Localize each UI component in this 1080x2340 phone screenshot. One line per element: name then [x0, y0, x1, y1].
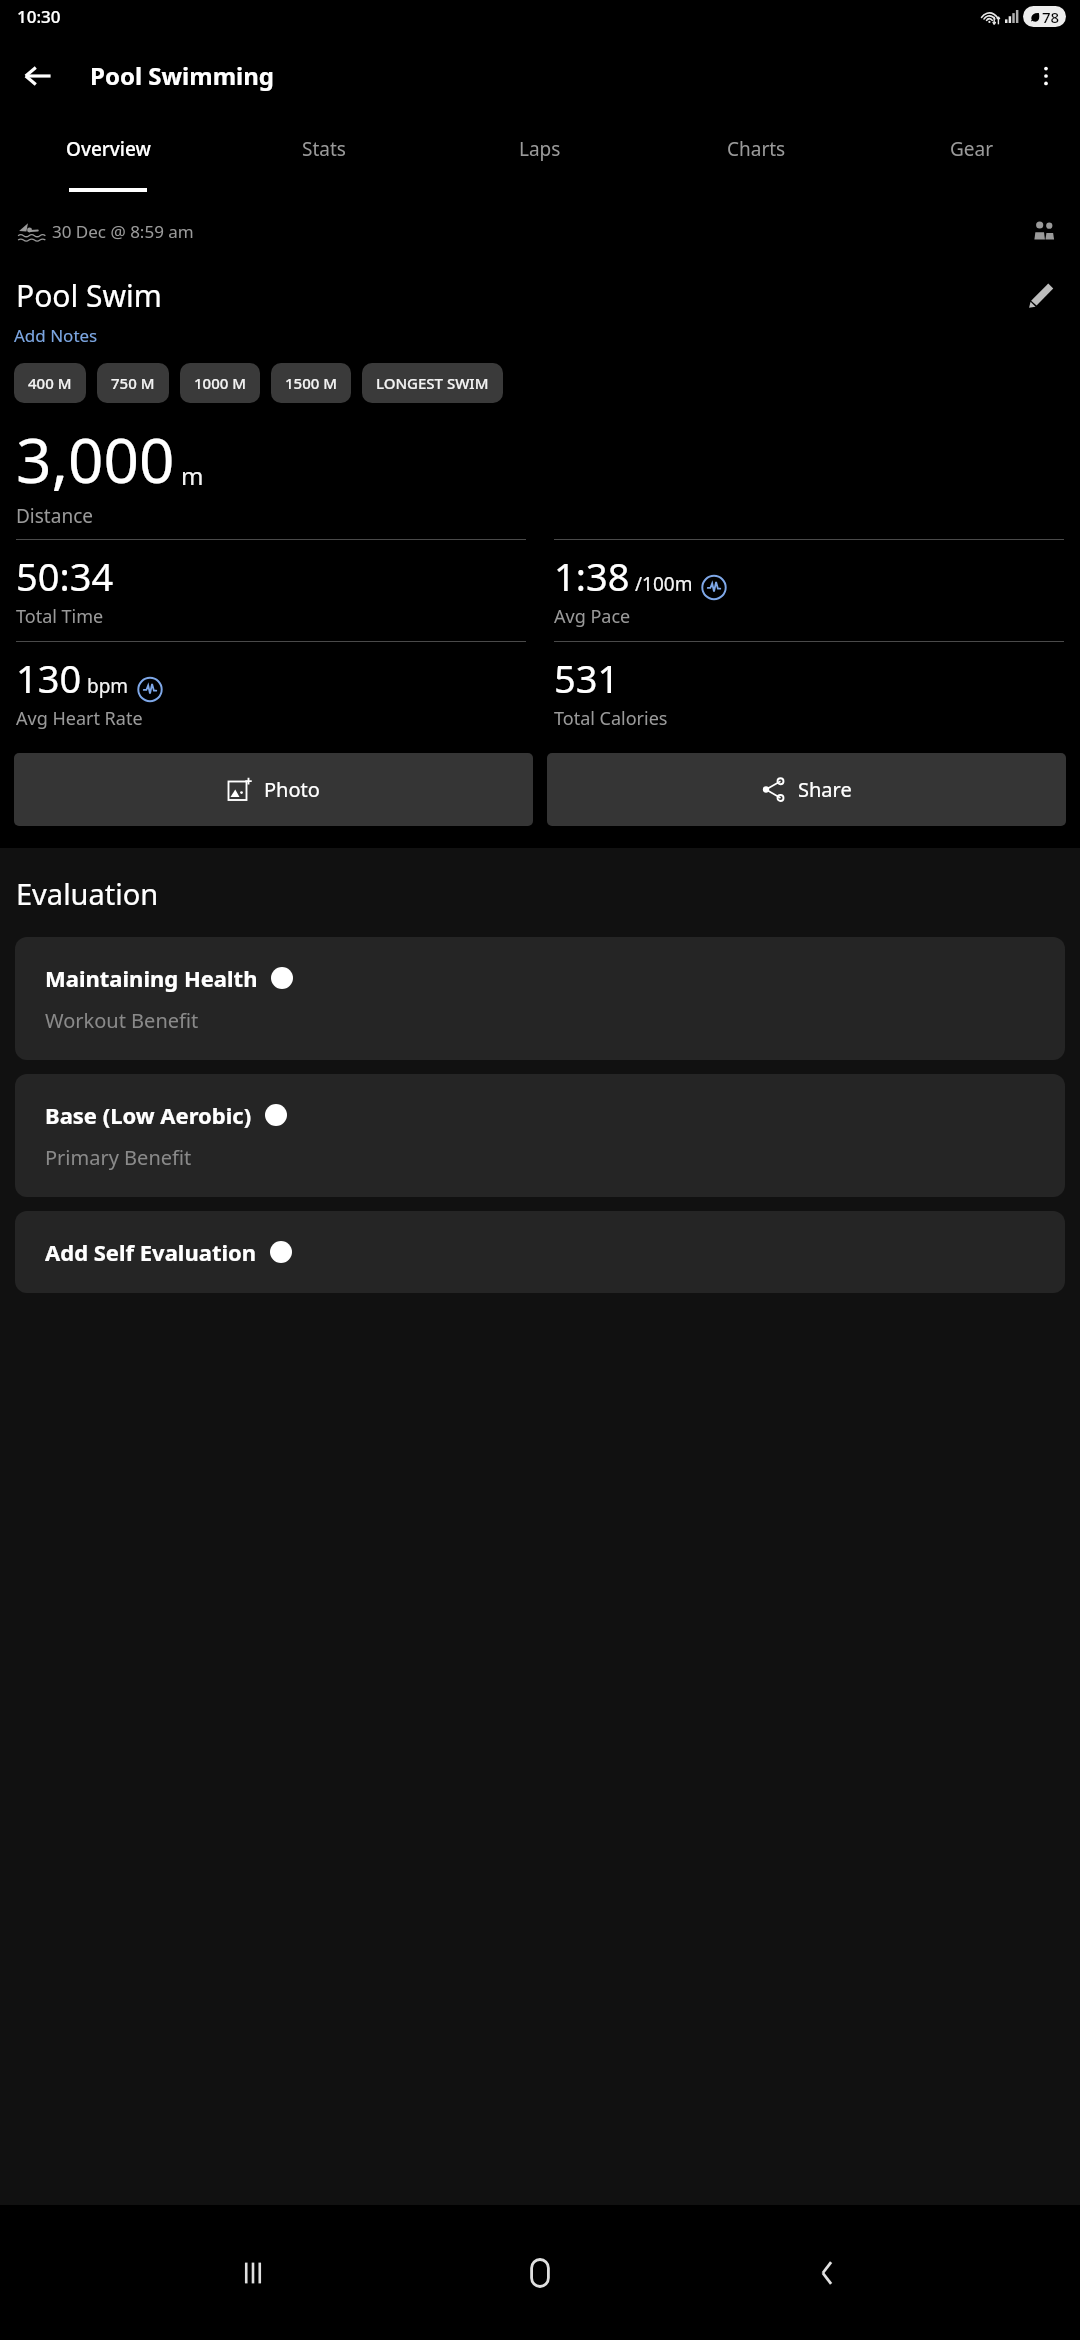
staticText: Share — [798, 776, 852, 803]
staticText: Laps — [519, 136, 561, 162]
button[interactable]: Charts — [648, 118, 864, 198]
staticText: Distance — [16, 503, 93, 529]
staticText: 30 Dec @ 8:59 am — [52, 220, 194, 243]
staticText: Base (Low Aerobic) — [45, 1100, 252, 1130]
staticText: LONGEST SWIM — [376, 373, 489, 393]
button[interactable]: Gear — [864, 118, 1080, 198]
button[interactable]: Add Self Evaluation — [15, 1211, 1065, 1293]
staticText: Add Self Evaluation — [45, 1237, 257, 1267]
button[interactable]: Home — [505, 2238, 575, 2308]
staticText: Evaluation — [16, 874, 159, 913]
button[interactable]: 1:38 — [554, 539, 1064, 629]
button[interactable]: 750 M — [97, 363, 169, 403]
staticText: 750 M — [111, 373, 155, 393]
staticText: /100m — [635, 571, 693, 597]
button[interactable]: Photo — [14, 753, 533, 826]
button[interactable]: Back — [793, 2238, 863, 2308]
staticText: 1500 M — [285, 373, 337, 393]
button[interactable]: Maintaining Health — [15, 937, 1065, 1060]
button[interactable]: More options — [1020, 50, 1072, 102]
staticText: 531 — [554, 652, 620, 704]
staticText: Primary Benefit — [45, 1144, 192, 1171]
staticText: 50:34 — [16, 550, 114, 602]
button[interactable]: Back — [10, 48, 66, 104]
staticText: Total Calories — [554, 706, 668, 731]
button[interactable]: 130 — [16, 641, 526, 731]
staticText: 130 — [16, 652, 82, 704]
staticText: Charts — [727, 136, 786, 162]
button[interactable]: 400 M — [14, 363, 86, 403]
button[interactable]: Stats — [216, 118, 432, 198]
staticText: Total Time — [16, 604, 104, 629]
staticText: 10:30 — [17, 5, 61, 28]
button[interactable]: 531 — [554, 641, 1064, 731]
staticText: Workout Benefit — [45, 1007, 199, 1034]
staticText: 1:38 — [554, 550, 630, 602]
staticText: Gear — [950, 136, 994, 162]
button[interactable]: Overview — [0, 118, 216, 198]
staticText: bpm — [87, 673, 129, 699]
staticText: Avg Heart Rate — [16, 706, 143, 731]
staticText: m — [181, 459, 204, 492]
staticText: Photo — [264, 776, 320, 803]
button[interactable]: Participants — [1024, 211, 1064, 251]
button[interactable]: 1000 M — [180, 363, 260, 403]
button[interactable]: Recents — [218, 2238, 288, 2308]
staticText: Pool Swim — [16, 275, 162, 316]
button[interactable]: Laps — [432, 118, 648, 198]
button[interactable]: 1500 M — [271, 363, 351, 403]
staticText: Stats — [302, 136, 346, 162]
staticText: Overview — [66, 136, 151, 162]
staticText: 3,000 — [16, 417, 175, 501]
button[interactable]: Share — [547, 753, 1066, 826]
staticText: Maintaining Health — [45, 963, 258, 993]
button[interactable]: Add Notes — [14, 322, 98, 349]
button[interactable]: 50:34 — [16, 539, 526, 629]
button[interactable]: Edit — [1018, 272, 1064, 318]
staticText: Avg Pace — [554, 604, 631, 629]
staticText: 1000 M — [194, 373, 246, 393]
button[interactable]: LONGEST SWIM — [362, 363, 503, 403]
staticText: Pool Swimming — [90, 59, 274, 92]
staticText: 78 — [1042, 7, 1060, 27]
button[interactable]: Base (Low Aerobic) — [15, 1074, 1065, 1197]
staticText: 400 M — [28, 373, 72, 393]
